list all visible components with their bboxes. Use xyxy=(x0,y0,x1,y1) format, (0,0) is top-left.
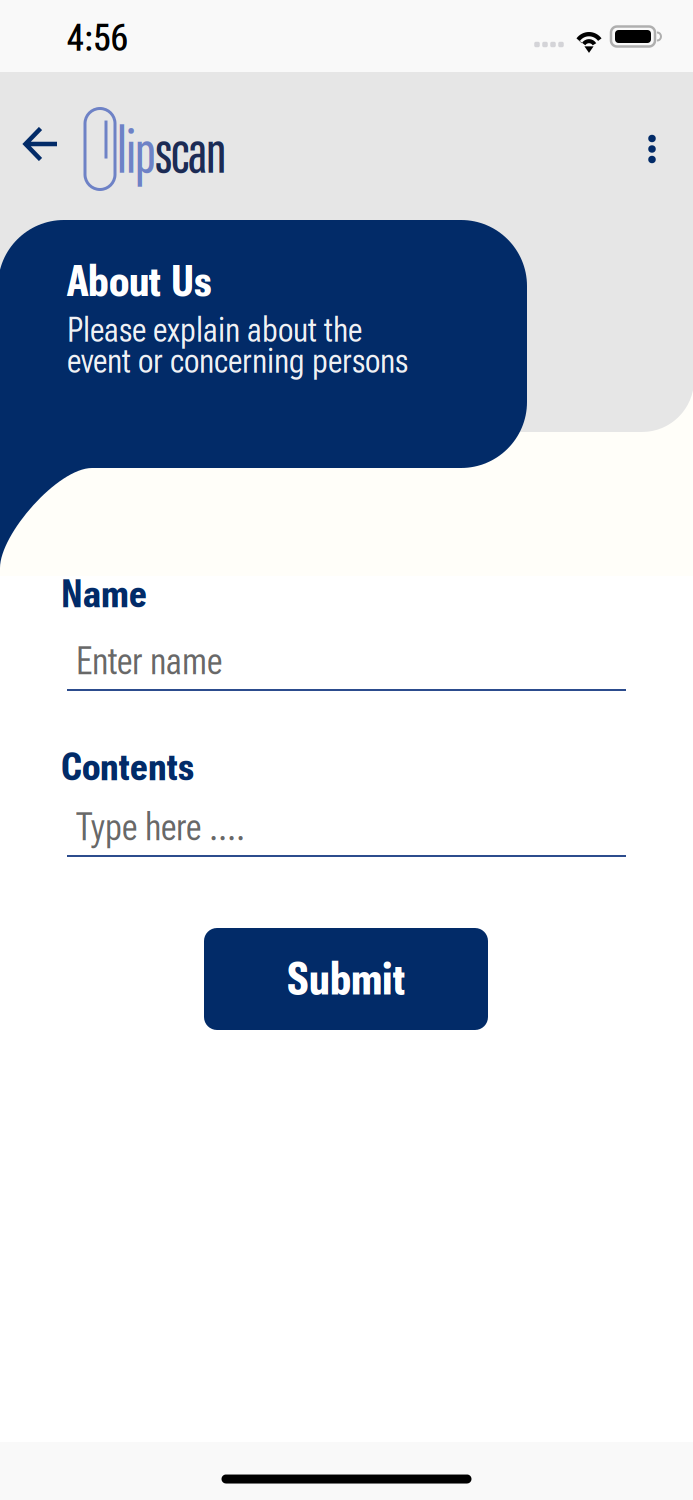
staticText: event or concerning persons xyxy=(67,341,408,381)
button[interactable]: Name xyxy=(67,646,626,692)
staticText: Enter name xyxy=(76,638,222,684)
button[interactable]: More options xyxy=(624,121,680,177)
staticText: Contents xyxy=(61,744,194,790)
staticText: Name xyxy=(61,571,147,617)
staticText: Please explain about the xyxy=(67,310,362,350)
staticText: lip xyxy=(117,111,155,189)
staticText: About Us xyxy=(67,255,212,307)
button[interactable]: Contents xyxy=(67,812,626,858)
staticText: scan xyxy=(155,111,226,189)
staticText: Type here .... xyxy=(76,804,245,850)
button[interactable]: Back xyxy=(8,111,74,177)
button[interactable]: Submit xyxy=(204,928,488,1030)
staticText: 4:56 xyxy=(67,16,128,60)
staticText: Submit xyxy=(287,952,405,1005)
